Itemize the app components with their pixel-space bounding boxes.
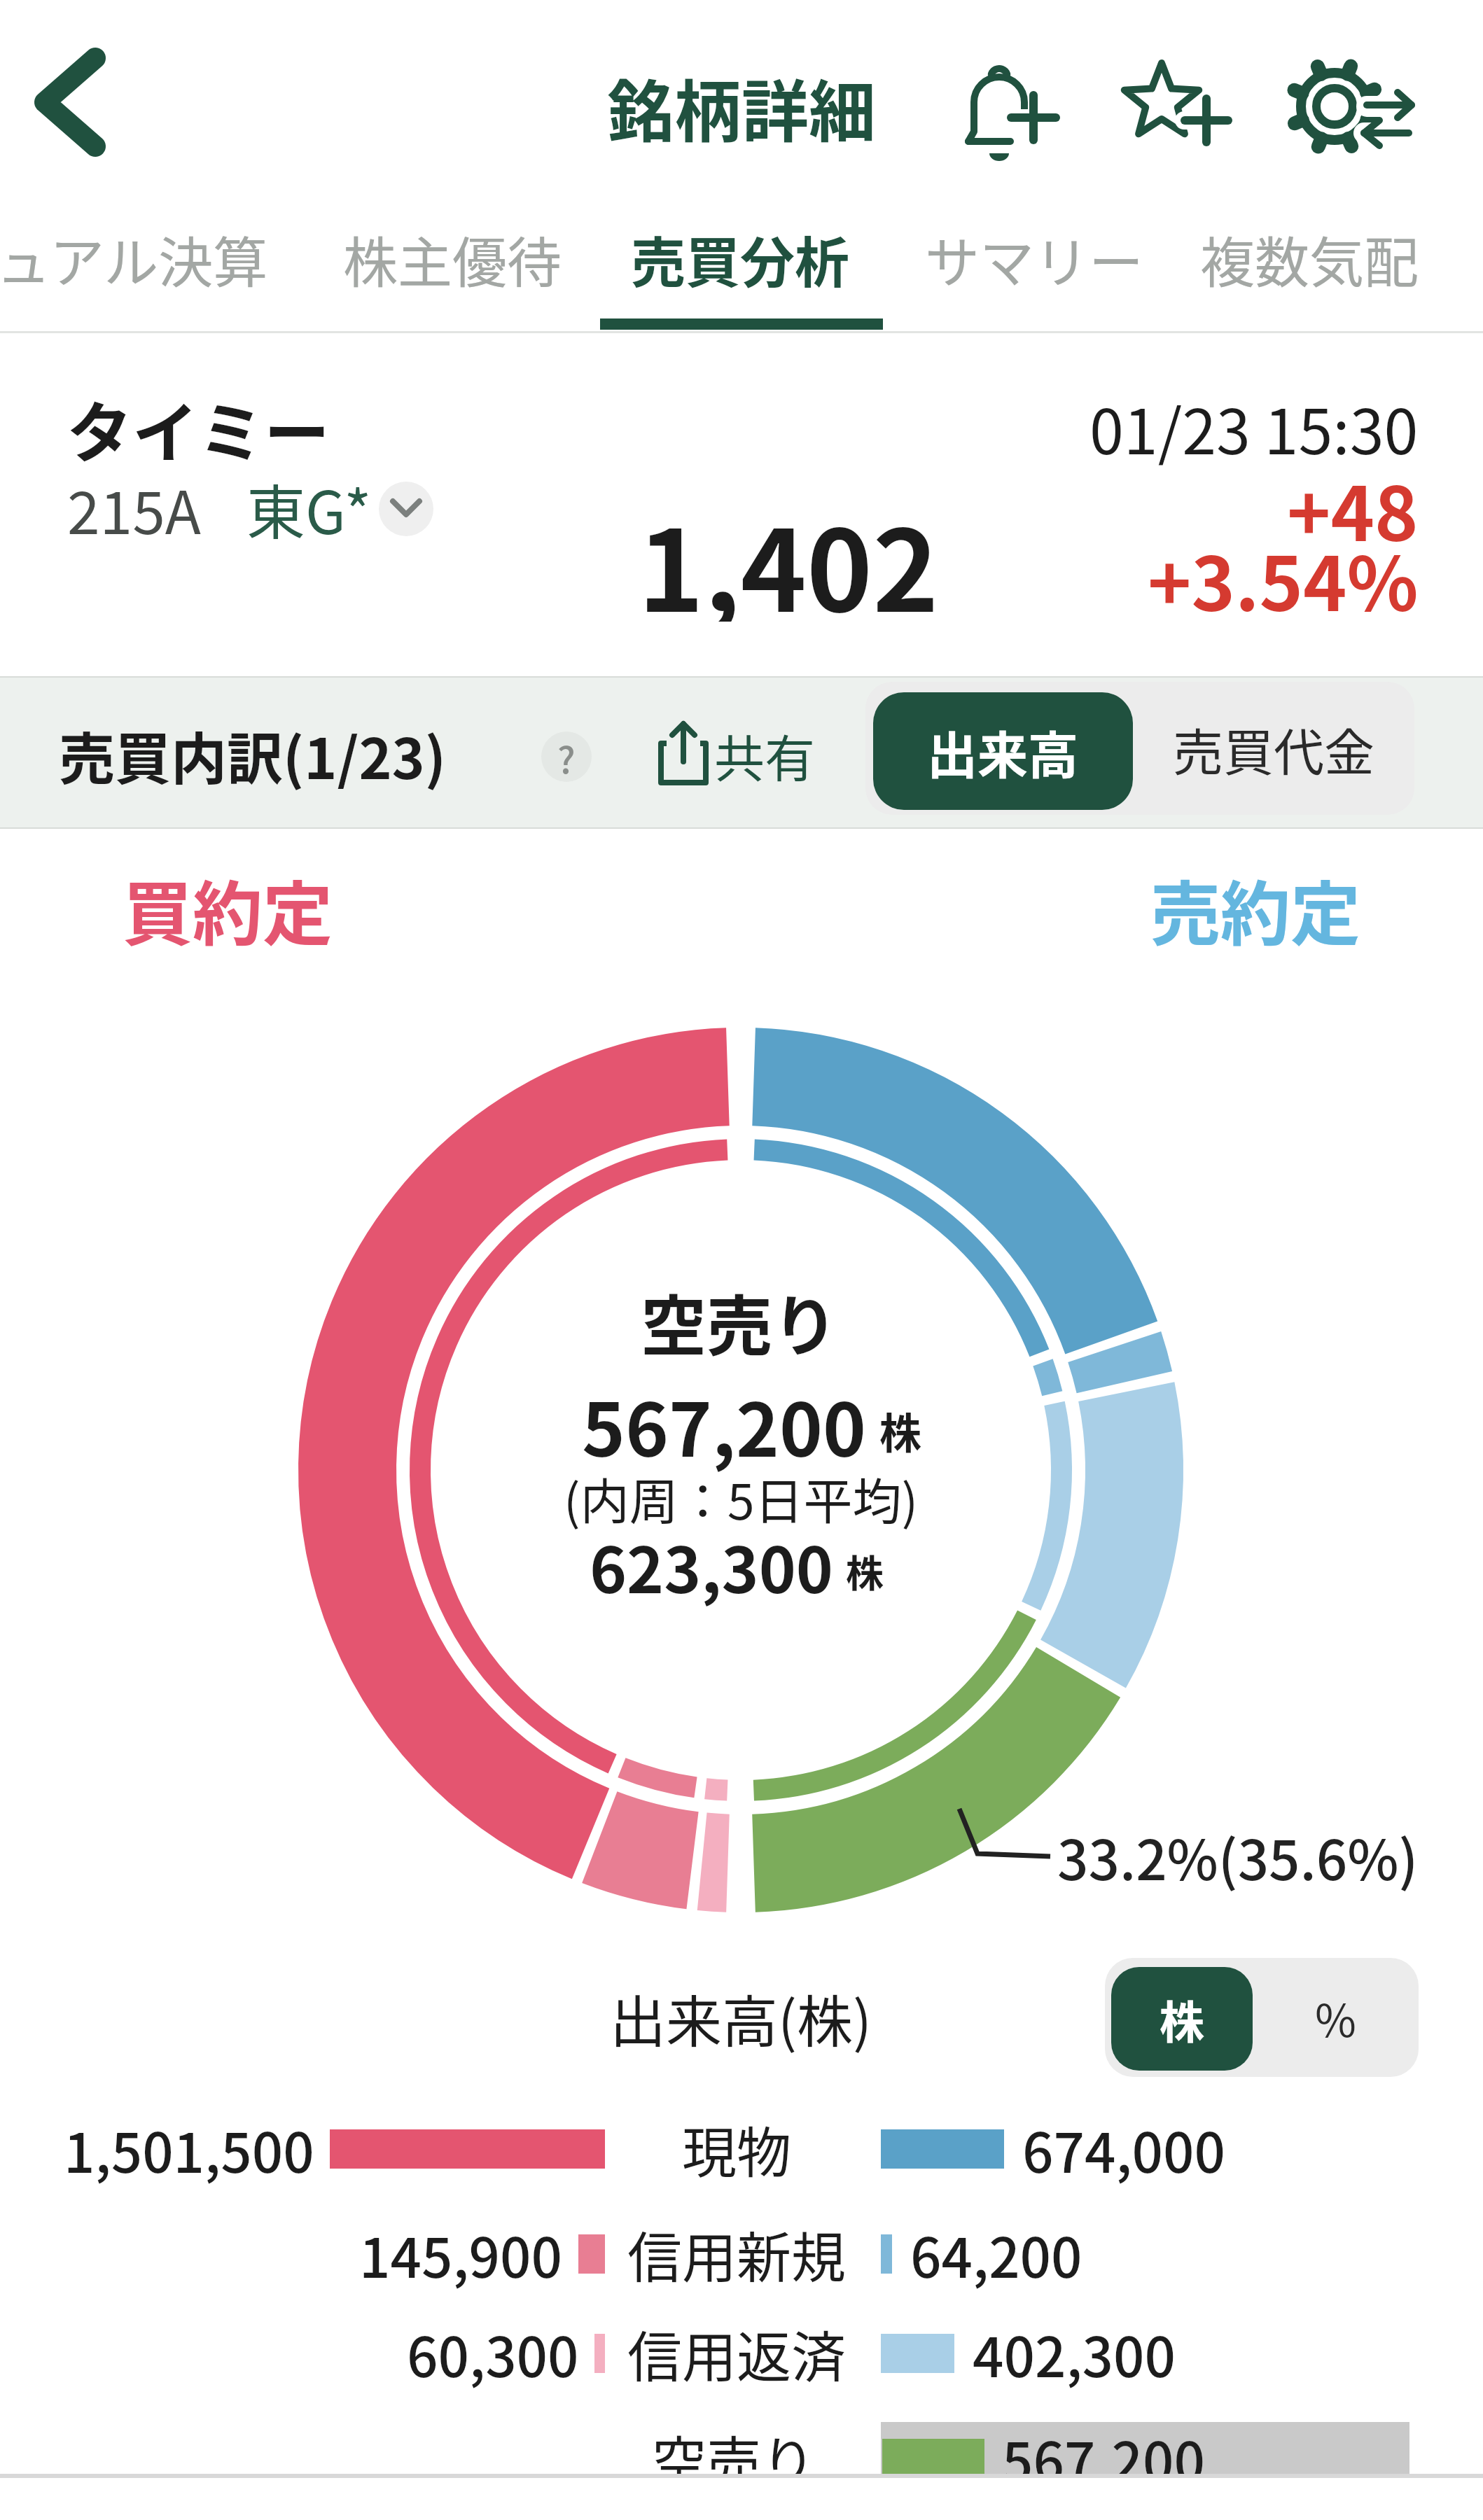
button[interactable]: 株	[1111, 1967, 1253, 2071]
staticText: +3.54%	[1148, 525, 1419, 632]
button[interactable]	[28, 42, 119, 161]
staticText: 402,300	[973, 2314, 1176, 2393]
staticText: 出来高(株)	[610, 1977, 872, 2058]
staticText: +48	[1287, 455, 1419, 562]
staticText: サマリー	[925, 220, 1144, 299]
staticText: 複数気配	[1200, 220, 1419, 299]
staticText: 623,300	[590, 1520, 833, 1611]
staticText: ジュアル決算	[0, 220, 268, 299]
staticText: 出来高	[927, 715, 1079, 787]
staticText: 33.2%(35.6%)	[1057, 1817, 1419, 1896]
button[interactable]	[952, 56, 1064, 161]
staticText: 売買分析	[631, 220, 850, 299]
button[interactable]: 売買代金	[1133, 682, 1414, 815]
staticText: タイミー	[67, 381, 330, 476]
staticText: 1,501,500	[64, 2110, 314, 2189]
button[interactable]: %	[1253, 1958, 1419, 2077]
button[interactable]: 売買分析	[0, 0, 980, 140]
button[interactable]	[379, 482, 433, 536]
staticText: 売買内訳(1/23)	[59, 714, 447, 795]
staticText: 信用返済	[627, 2314, 847, 2393]
staticText: 買約定	[123, 858, 333, 960]
staticText: 株主優待	[343, 220, 562, 299]
staticText: 145,900	[359, 2215, 563, 2294]
staticText: 現物	[682, 2110, 792, 2189]
staticText: 株	[879, 1400, 921, 1461]
staticText: 567,200	[1002, 2419, 1206, 2498]
staticText: 東G*	[246, 466, 372, 552]
staticText: 空売り	[652, 2419, 816, 2498]
staticText: 567,200	[582, 1371, 866, 1478]
button[interactable]	[651, 714, 819, 798]
button[interactable]: サマリー	[0, 0, 980, 140]
staticText: 株	[1160, 1987, 1204, 2052]
staticText: (内周：5日平均)	[564, 1463, 919, 1534]
staticText: 信用新規	[627, 2215, 847, 2294]
staticText: 674,000	[1022, 2110, 1226, 2189]
staticText: 01/23 15:30	[1089, 383, 1419, 472]
button[interactable]: 複数気配	[0, 0, 980, 140]
button[interactable]: 株主優待	[0, 0, 980, 140]
staticText: 空売り	[641, 1274, 839, 1369]
staticText: 1,402	[638, 482, 939, 622]
staticText: %	[1315, 1985, 1356, 2050]
staticText: 売約定	[1150, 858, 1360, 960]
staticText: 60,300	[407, 2314, 579, 2393]
button[interactable]	[1288, 56, 1421, 161]
staticText: 株	[846, 1543, 884, 1598]
staticText: 共有	[714, 718, 816, 791]
staticText: ?	[557, 731, 576, 782]
staticText: 銘柄詳細	[607, 58, 876, 155]
staticText: 64,200	[910, 2215, 1082, 2294]
staticText: 売買代金	[1173, 712, 1375, 785]
button[interactable]: ?	[541, 731, 592, 782]
button[interactable]	[1120, 56, 1232, 161]
staticText: 215A	[67, 466, 201, 552]
button[interactable]: 出来高	[873, 692, 1133, 810]
